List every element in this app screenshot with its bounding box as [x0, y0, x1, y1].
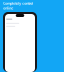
staticText: Completely control: [3, 1, 33, 6]
staticText: online: [3, 6, 13, 10]
